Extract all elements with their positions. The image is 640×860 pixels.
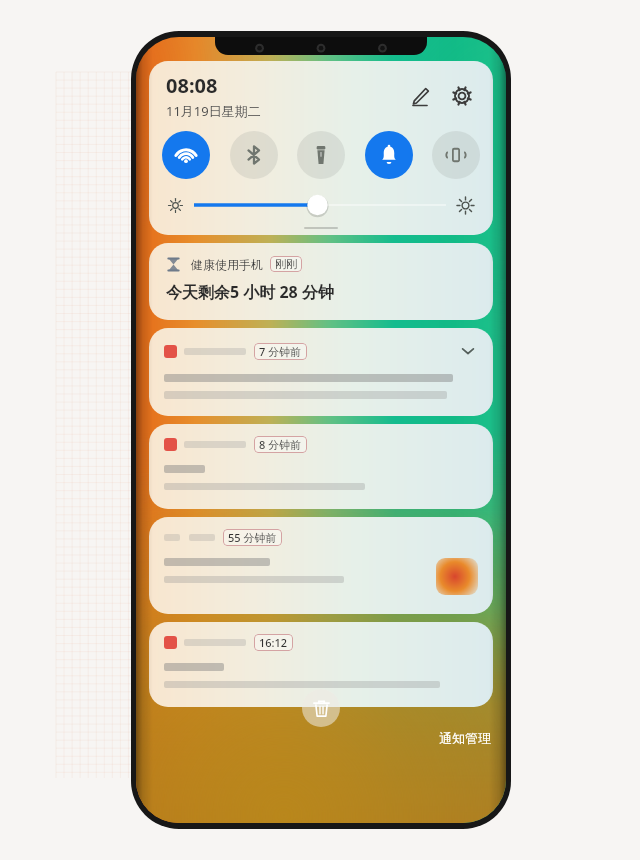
staticText: 通知管理 (439, 730, 491, 746)
button[interactable]: 7 分钟前 (149, 328, 493, 416)
button[interactable]: Flashlight (297, 131, 345, 179)
button[interactable]: Ringer (365, 131, 413, 179)
button[interactable]: 8 分钟前 (149, 424, 493, 509)
button[interactable]: 08:08 (149, 61, 493, 235)
button[interactable]: Clear all notifications (302, 689, 340, 727)
staticText: 7 分钟前 (259, 344, 302, 359)
staticText: 今天剩余5 小时 28 分钟 (166, 281, 334, 303)
button[interactable]: Settings (445, 79, 479, 113)
button[interactable]: Wi-Fi (162, 131, 210, 179)
staticText: 08:08 (166, 72, 218, 99)
staticText: 刚刚 (275, 257, 297, 271)
button[interactable]: Bluetooth (230, 131, 278, 179)
button[interactable]: 16:12 (149, 622, 493, 707)
button[interactable] (186, 193, 454, 217)
staticText: 16:12 (259, 635, 288, 650)
button[interactable]: 健康使用手机 (149, 243, 493, 320)
staticText: 健康使用手机 (191, 257, 263, 272)
button[interactable]: Edit (403, 79, 437, 113)
button[interactable]: Vibrate (432, 131, 480, 179)
button[interactable]: Expand (457, 340, 479, 362)
button[interactable]: 55 分钟前 (149, 517, 493, 614)
staticText: 55 分钟前 (228, 530, 277, 545)
button[interactable]: 通知管理 (439, 730, 491, 746)
staticText: 8 分钟前 (259, 437, 302, 452)
staticText: 11月19日星期二 (166, 102, 261, 120)
